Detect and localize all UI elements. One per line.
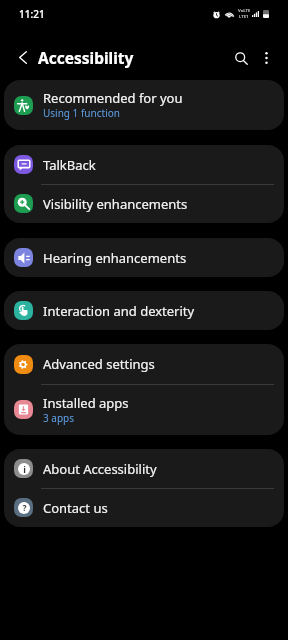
button[interactable]: More options xyxy=(255,47,277,69)
staticText: Recommended for you xyxy=(43,89,183,107)
staticText: VoLTE xyxy=(238,8,250,14)
staticText: Accessibility xyxy=(38,47,134,68)
button[interactable]: Recommended for you xyxy=(4,80,284,130)
staticText: Visibility enhancements xyxy=(43,195,188,213)
staticText: LTE1 xyxy=(239,14,249,20)
button[interactable]: ? xyxy=(4,488,284,527)
button[interactable]: Navigate up xyxy=(10,45,35,70)
button[interactable]: TalkBack xyxy=(4,145,284,184)
staticText: TalkBack xyxy=(43,156,96,174)
staticText: Advanced settings xyxy=(43,355,155,373)
staticText: Installed apps xyxy=(43,394,129,412)
staticText: Hearing enhancements xyxy=(43,249,187,267)
staticText: Contact us xyxy=(43,499,108,517)
button[interactable]: i xyxy=(4,449,284,488)
button[interactable]: Interaction and dexterity xyxy=(4,291,284,330)
button[interactable]: Visibility enhancements xyxy=(4,184,284,223)
staticText: i xyxy=(23,463,26,475)
staticText: ? xyxy=(22,502,27,514)
button[interactable]: Search xyxy=(229,46,253,70)
staticText: Using 1 function xyxy=(43,106,120,120)
staticText: 3 apps xyxy=(43,411,75,425)
button[interactable]: Installed apps xyxy=(4,384,284,435)
button[interactable]: Hearing enhancements xyxy=(4,238,284,277)
staticText: Interaction and dexterity xyxy=(43,302,195,320)
staticText: About Accessibility xyxy=(43,460,157,478)
staticText: 11:21 xyxy=(19,7,45,21)
button[interactable]: Advanced settings xyxy=(4,344,284,384)
